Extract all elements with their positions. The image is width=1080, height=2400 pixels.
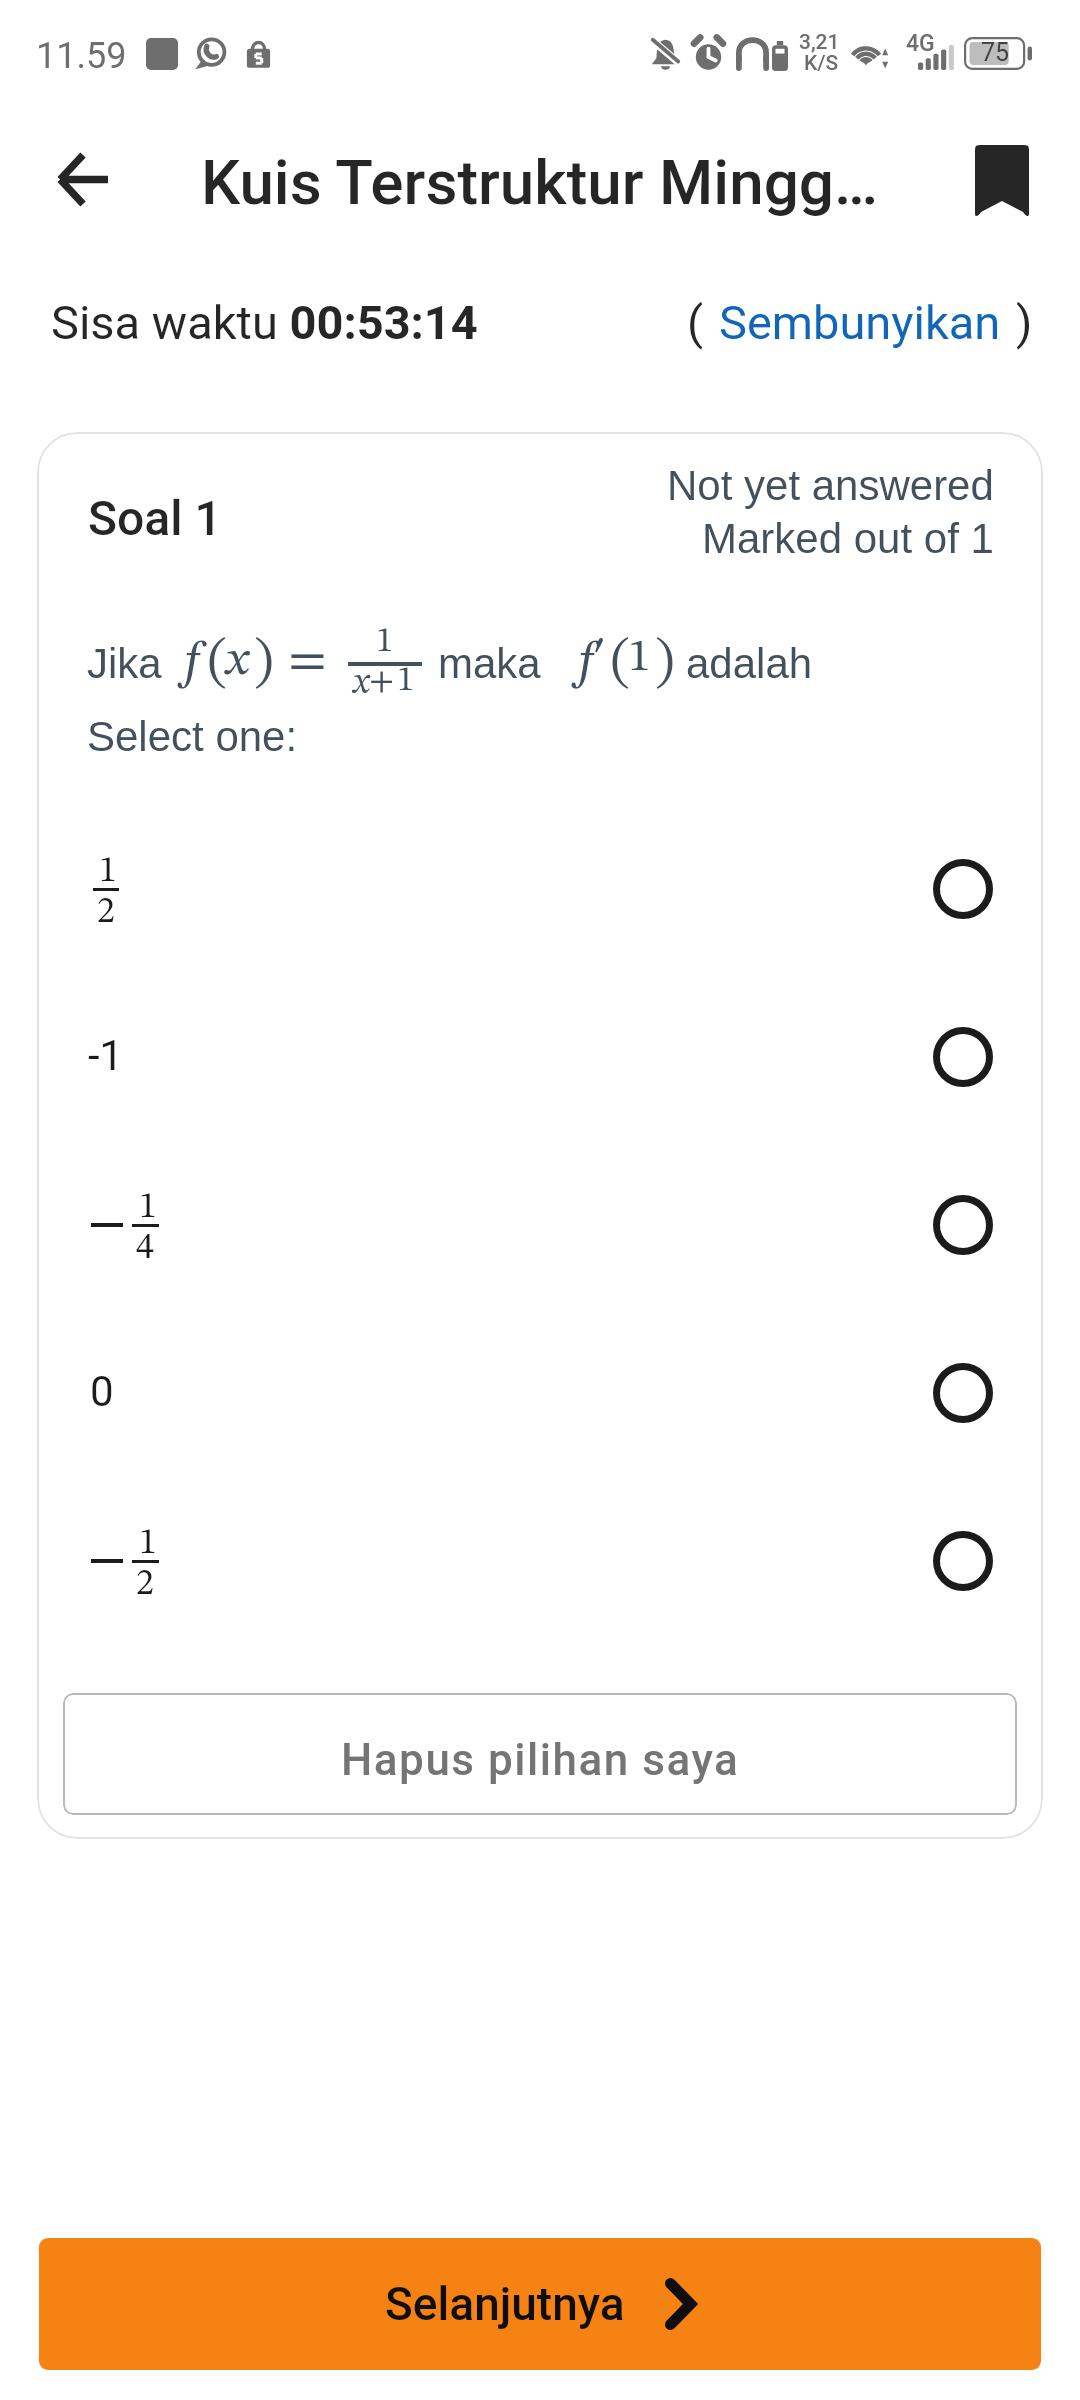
staticText: Sembunyikan xyxy=(719,295,1001,350)
staticText: 𝑥 xyxy=(351,666,372,702)
staticText: Hapus pilihan saya xyxy=(341,1734,740,1786)
staticText: 2 xyxy=(136,1567,154,1603)
staticText: Jika xyxy=(87,640,162,687)
staticText: 1 xyxy=(376,624,394,659)
button[interactable]: -1 xyxy=(37,973,1043,1141)
staticText: 1 xyxy=(139,1526,157,1562)
staticText: ) xyxy=(1016,295,1033,350)
staticText: Marked out of 1 xyxy=(702,515,994,562)
staticText: ( xyxy=(207,635,227,691)
staticText: ) xyxy=(655,635,675,691)
staticText: 2 xyxy=(97,895,115,931)
staticText: 1 xyxy=(628,635,651,681)
staticText: = xyxy=(288,635,327,689)
staticText: Select one: xyxy=(87,713,298,760)
staticText: ′ xyxy=(592,634,607,682)
staticText: ( xyxy=(687,295,704,350)
staticText: 𝑓 xyxy=(177,637,208,689)
button[interactable]: 1 xyxy=(37,1477,1043,1645)
staticText: Sisa waktu 00:53:14 xyxy=(51,295,478,350)
staticText: 1 xyxy=(397,663,415,698)
staticText: adalah xyxy=(686,640,813,687)
staticText: Soal 1 xyxy=(88,490,222,546)
button[interactable]: Hapus pilihan saya xyxy=(63,1693,1017,1815)
button[interactable]: Bookmark xyxy=(954,132,1050,228)
staticText: 𝑥 xyxy=(223,636,251,686)
button[interactable]: Sembunyikan xyxy=(706,295,1014,350)
staticText: 11.59 xyxy=(36,35,127,77)
staticText: + xyxy=(369,664,395,699)
staticText: -1 xyxy=(88,1031,124,1080)
staticText: maka xyxy=(438,640,541,687)
button[interactable]: 1 xyxy=(37,1141,1043,1309)
staticText: K/S xyxy=(804,51,839,76)
staticText: 0 xyxy=(90,1367,114,1416)
staticText: 4G xyxy=(906,30,935,57)
button[interactable]: Back xyxy=(35,131,131,227)
staticText: Kuis Terstruktur Mingg… xyxy=(201,146,878,219)
staticText: 4 xyxy=(136,1231,154,1267)
button[interactable]: 0 xyxy=(37,1309,1043,1477)
staticText: 3,21 xyxy=(799,30,840,55)
staticText: 75 xyxy=(981,38,1010,67)
staticText: ) xyxy=(254,635,274,691)
button[interactable]: 1 xyxy=(37,805,1043,973)
staticText: 1 xyxy=(139,1190,157,1226)
staticText: ( xyxy=(610,635,630,691)
button[interactable]: Selanjutnya xyxy=(39,2238,1041,2370)
staticText: 1 xyxy=(99,854,117,890)
staticText: Not yet answered xyxy=(667,462,994,509)
staticText: 𝑓 xyxy=(571,637,602,689)
staticText: Selanjutnya xyxy=(385,2277,625,2331)
